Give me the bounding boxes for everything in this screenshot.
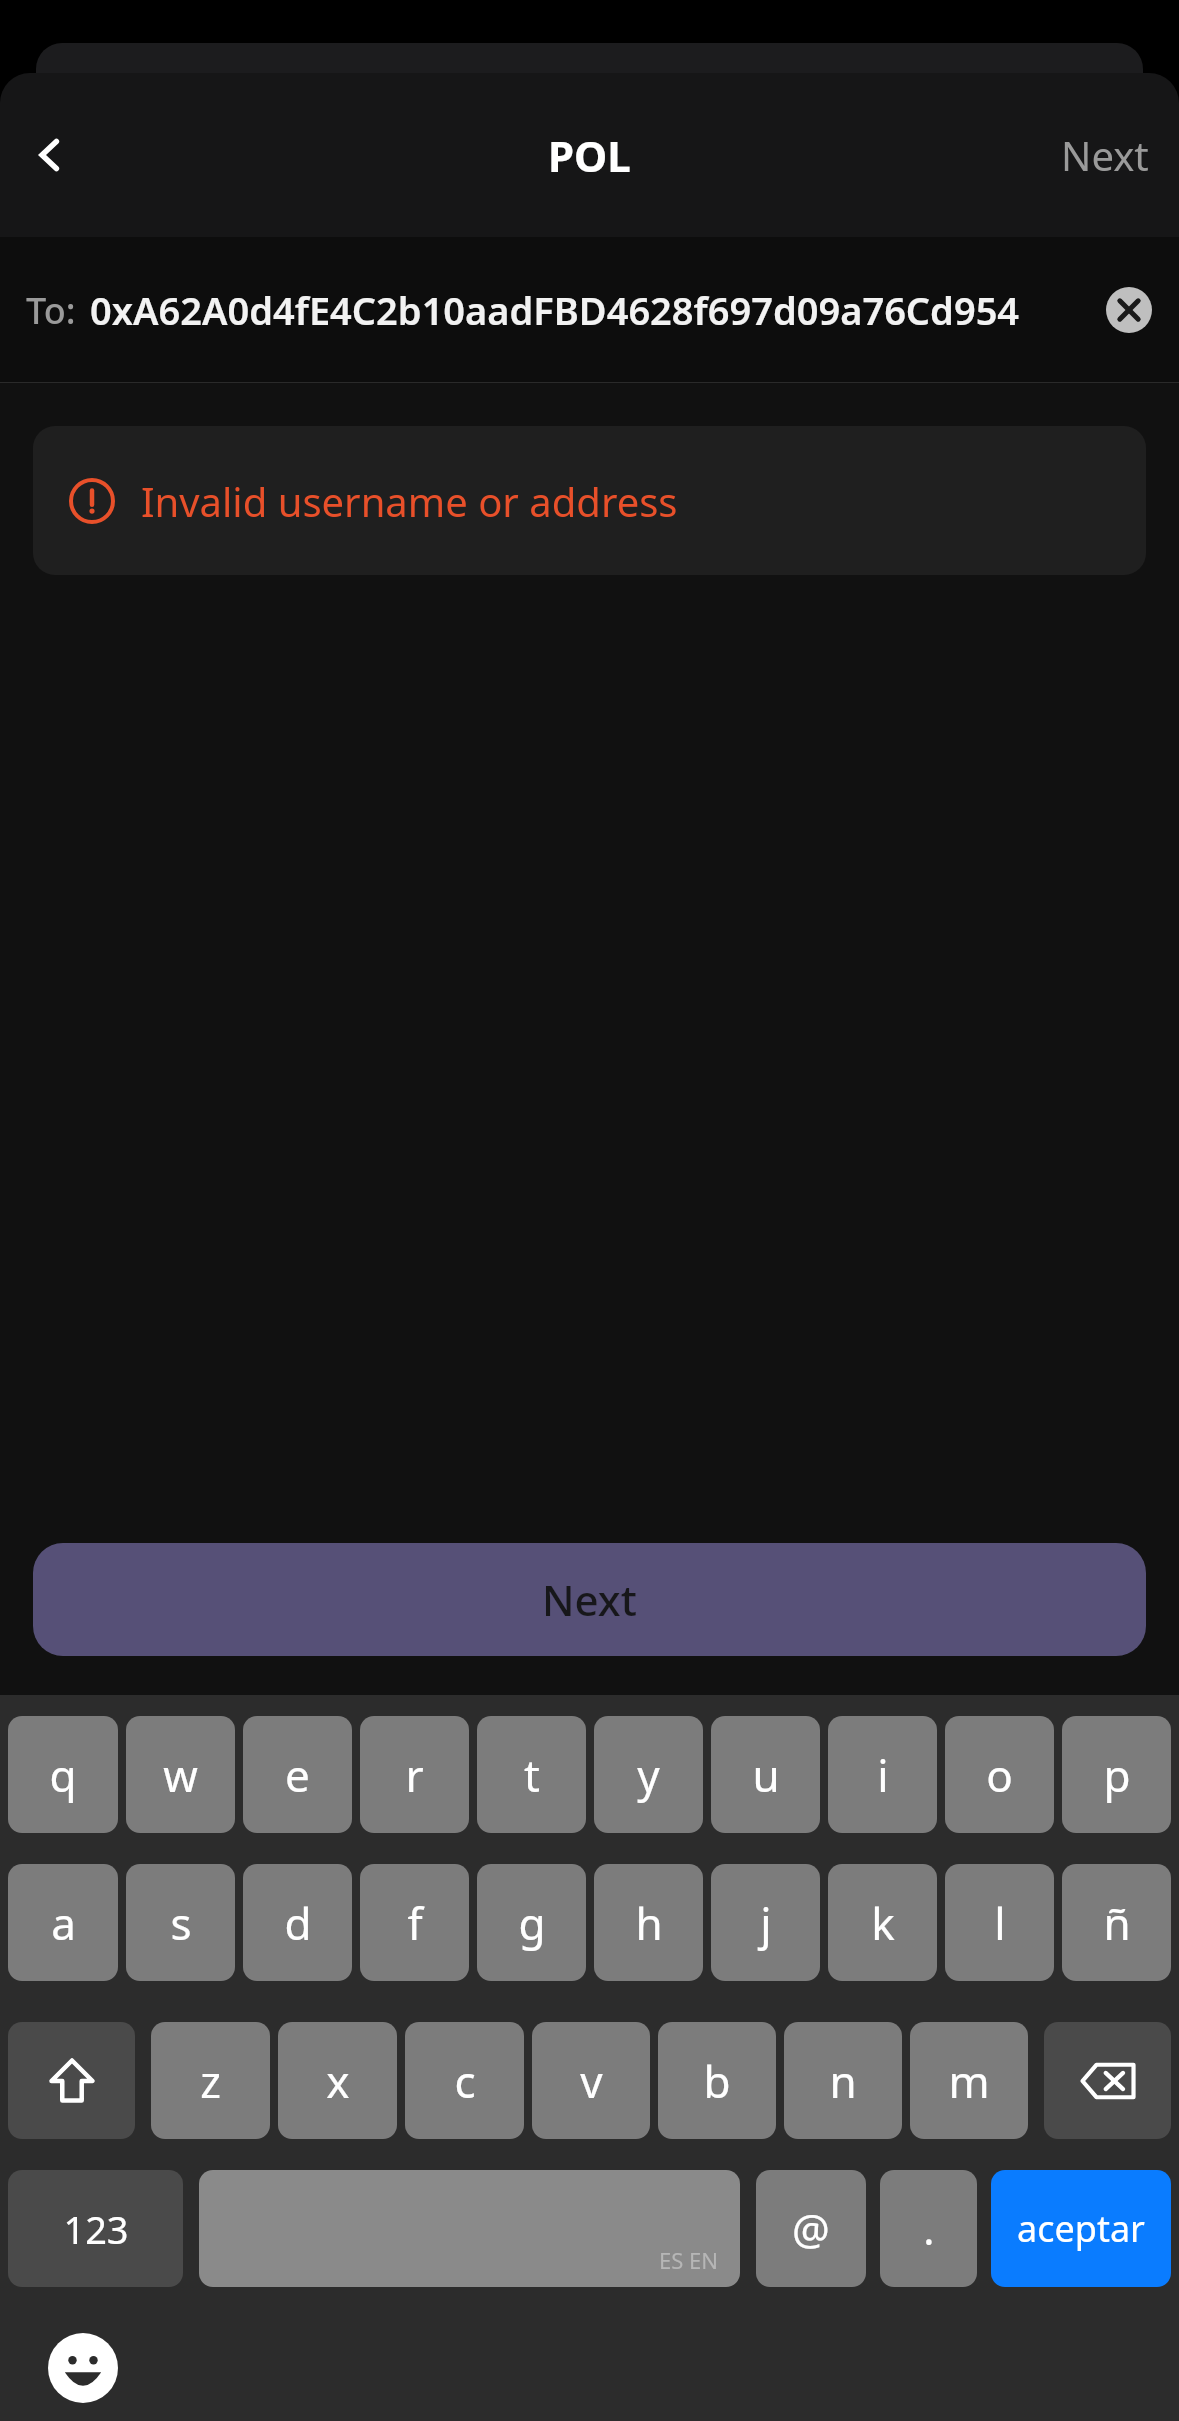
staticText: r bbox=[405, 1745, 424, 1805]
button[interactable]: q bbox=[8, 1716, 118, 1833]
staticText: o bbox=[986, 1745, 1013, 1805]
button[interactable]: aceptar bbox=[991, 2170, 1171, 2287]
button[interactable]: ñ bbox=[1062, 1864, 1171, 1981]
button[interactable]: m bbox=[910, 2022, 1028, 2139]
button[interactable]: h bbox=[594, 1864, 703, 1981]
button[interactable]: t bbox=[477, 1716, 586, 1833]
staticText: Next bbox=[542, 1571, 637, 1628]
button[interactable]: s bbox=[126, 1864, 235, 1981]
button[interactable]: j bbox=[711, 1864, 820, 1981]
button[interactable]: 123 bbox=[8, 2170, 183, 2287]
button[interactable]: c bbox=[405, 2022, 524, 2139]
staticText: To: bbox=[26, 286, 76, 335]
staticText: e bbox=[285, 1745, 310, 1805]
staticText: aceptar bbox=[1017, 2204, 1145, 2253]
button[interactable]: e bbox=[243, 1716, 352, 1833]
staticText: Next bbox=[1061, 128, 1149, 182]
button[interactable]: Space bbox=[199, 2170, 740, 2287]
button[interactable]: g bbox=[477, 1864, 586, 1981]
button[interactable]: b bbox=[658, 2022, 776, 2139]
staticText: Invalid username or address bbox=[141, 474, 678, 528]
staticText: i bbox=[877, 1745, 889, 1805]
staticText: a bbox=[51, 1893, 76, 1953]
button[interactable]: v bbox=[532, 2022, 650, 2139]
staticText: @ bbox=[792, 2200, 830, 2257]
button[interactable]: z bbox=[151, 2022, 270, 2139]
staticText: v bbox=[580, 2051, 603, 2111]
staticText: x bbox=[326, 2051, 350, 2111]
staticText: h bbox=[635, 1893, 663, 1953]
button[interactable]: d bbox=[243, 1864, 352, 1981]
staticText: m bbox=[948, 2051, 990, 2111]
button[interactable]: Clear recipient bbox=[1097, 278, 1161, 342]
staticText: n bbox=[829, 2051, 857, 2111]
staticText: ñ bbox=[1103, 1893, 1131, 1953]
button[interactable]: f bbox=[360, 1864, 469, 1981]
button[interactable]: u bbox=[711, 1716, 820, 1833]
staticText: y bbox=[637, 1745, 660, 1805]
button[interactable]: y bbox=[594, 1716, 703, 1833]
staticText: s bbox=[170, 1893, 192, 1953]
button[interactable]: Shift bbox=[8, 2022, 135, 2139]
staticText: f bbox=[407, 1893, 423, 1953]
staticText: d bbox=[284, 1893, 312, 1953]
staticText: z bbox=[200, 2051, 221, 2111]
button[interactable]: Emoji bbox=[48, 2333, 118, 2403]
staticText: p bbox=[1103, 1745, 1131, 1805]
button[interactable]: r bbox=[360, 1716, 469, 1833]
button[interactable]: Back bbox=[18, 123, 82, 187]
staticText: b bbox=[703, 2051, 731, 2111]
button[interactable]: Next bbox=[33, 1543, 1146, 1656]
staticText: q bbox=[49, 1745, 77, 1805]
button[interactable]: k bbox=[828, 1864, 937, 1981]
staticText: ES EN bbox=[659, 2245, 718, 2275]
button[interactable]: Next bbox=[1031, 110, 1179, 200]
staticText: g bbox=[518, 1893, 546, 1953]
button[interactable]: o bbox=[945, 1716, 1054, 1833]
staticText: 0xA62A0d4fE4C2b10aadFBD4628f697d09a76Cd9… bbox=[90, 284, 1081, 336]
button[interactable]: Backspace bbox=[1044, 2022, 1171, 2139]
staticText: POL bbox=[548, 127, 631, 184]
button[interactable]: Invalid username or address bbox=[33, 426, 1146, 575]
staticText: t bbox=[524, 1745, 540, 1805]
button[interactable]: @ bbox=[756, 2170, 866, 2287]
button[interactable]: w bbox=[126, 1716, 235, 1833]
staticText: . bbox=[923, 2200, 935, 2257]
staticText: l bbox=[994, 1893, 1006, 1953]
button[interactable]: n bbox=[784, 2022, 902, 2139]
staticText: w bbox=[163, 1745, 198, 1805]
button[interactable]: p bbox=[1062, 1716, 1171, 1833]
staticText: j bbox=[760, 1893, 772, 1953]
button[interactable]: a bbox=[8, 1864, 118, 1981]
button[interactable]: i bbox=[828, 1716, 937, 1833]
button[interactable]: . bbox=[880, 2170, 977, 2287]
button[interactable]: l bbox=[945, 1864, 1054, 1981]
staticText: c bbox=[454, 2051, 476, 2111]
staticText: k bbox=[871, 1893, 895, 1953]
staticText: 123 bbox=[63, 2203, 129, 2255]
staticText: u bbox=[752, 1745, 780, 1805]
button[interactable]: x bbox=[278, 2022, 397, 2139]
